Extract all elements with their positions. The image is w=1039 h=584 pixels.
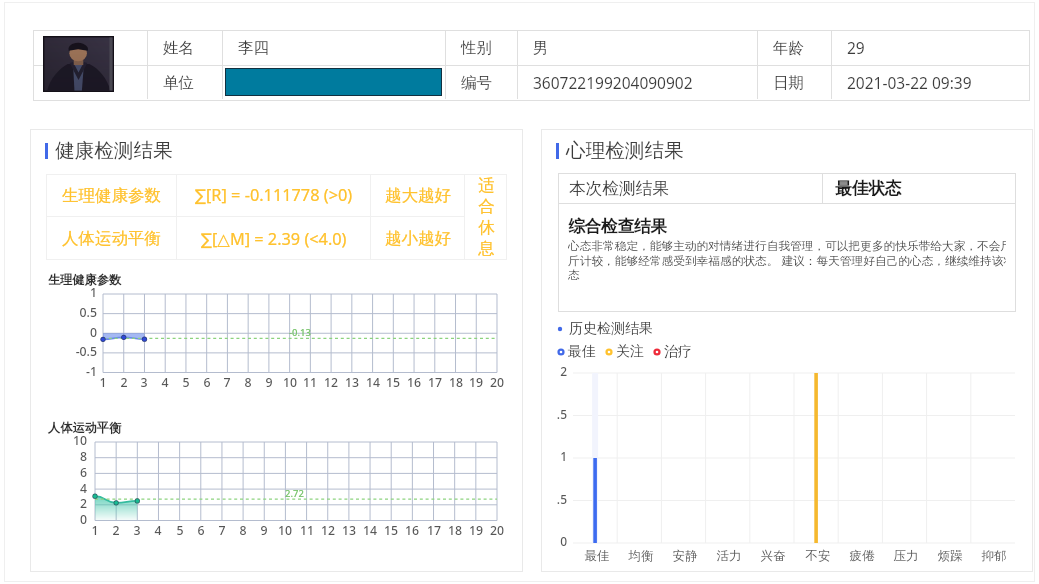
staticText: 人体运动平衡 (62, 228, 161, 249)
staticText: 心态非常稳定，能够主动的对情绪进行自我管理，可以把更多的快乐带给大家，不会斤 斤… (568, 239, 1006, 283)
staticText: 8 (49, 448, 87, 465)
button[interactable]: 生理健康参数 (46, 174, 464, 216)
staticText: 10 (279, 374, 301, 391)
staticText: 人体运动平衡 (48, 420, 122, 435)
staticText: 均衡 (619, 548, 663, 564)
button[interactable]: 本次检测结果 (558, 173, 1016, 203)
staticText: 历史检测结果 (569, 320, 653, 338)
staticText: ∑[△M] = 2.39 (<4.0) (201, 228, 347, 250)
staticText: 11 (299, 374, 321, 391)
staticText: 13 (341, 374, 363, 391)
staticText: 抑郁 (972, 548, 1016, 564)
staticText: 治疗 (664, 343, 692, 361)
staticText: 安静 (663, 548, 707, 564)
staticText: 5 (175, 374, 197, 391)
staticText: 心理检测结果 (566, 138, 684, 163)
staticText: 3 (126, 522, 148, 539)
staticText: 编号 (461, 73, 492, 93)
button[interactable]: 人体运动平衡 (46, 217, 464, 260)
staticText: 5 (169, 522, 191, 539)
staticText: 2.72 (285, 487, 304, 500)
staticText: 2 (532, 363, 567, 379)
button[interactable]: 历史检测结果 (555, 320, 653, 338)
staticText: ∑[R] = -0.111778 (>0) (195, 184, 353, 206)
staticText: 15 (380, 522, 402, 539)
staticText: -0.13 (289, 326, 311, 339)
staticText: 活力 (707, 548, 751, 564)
staticText: 20 (486, 522, 508, 539)
button[interactable]: 健康检测结果 (45, 138, 173, 163)
staticText: 4 (147, 522, 169, 539)
staticText: 7 (216, 374, 238, 391)
staticText: 6 (49, 464, 87, 481)
staticText: 疲倦 (840, 548, 884, 564)
staticText: 13 (338, 522, 360, 539)
button[interactable]: 最佳 (555, 343, 692, 361)
staticText: 姓名 (163, 38, 194, 58)
staticText: 健康检测结果 (55, 138, 173, 163)
staticText: 14 (362, 374, 384, 391)
staticText: 年龄 (773, 38, 804, 58)
staticText: -1 (59, 363, 97, 380)
staticText: 9 (253, 522, 275, 539)
staticText: 6 (196, 374, 218, 391)
staticText: 2 (105, 522, 127, 539)
staticText: 1 (532, 448, 567, 464)
staticText: 10 (49, 432, 87, 449)
staticText: 1 (59, 284, 97, 301)
staticText: 单位 (163, 73, 194, 93)
staticText: 4 (154, 374, 176, 391)
staticText: 生理健康参数 (48, 272, 122, 287)
staticText: 0 (59, 324, 97, 341)
staticText: 20 (486, 374, 508, 391)
staticText: 3 (133, 374, 155, 391)
staticText: 关注 (616, 343, 644, 361)
staticText: 18 (445, 374, 467, 391)
staticText: 17 (423, 522, 445, 539)
staticText: 19 (465, 374, 487, 391)
staticText: 本次检测结果 (569, 178, 670, 199)
staticText: 2021-03-22 09:39 (847, 72, 972, 93)
staticText: .5 (532, 406, 567, 422)
staticText: 最佳 (575, 548, 619, 564)
staticText: 9 (258, 374, 280, 391)
staticText: 18 (444, 522, 466, 539)
staticText: 最佳 (568, 343, 596, 361)
staticText: -0.5 (59, 343, 97, 360)
staticText: 最佳状态 (835, 178, 902, 199)
staticText: 综合检查结果 (568, 216, 667, 237)
staticText: 1 (84, 522, 106, 539)
staticText: 男 (533, 38, 549, 58)
staticText: 16 (401, 522, 423, 539)
staticText: 越大越好 (385, 185, 451, 206)
staticText: 15 (382, 374, 404, 391)
button[interactable]: 心理检测结果 (556, 138, 684, 163)
staticText: 2 (113, 374, 135, 391)
staticText: 10 (274, 522, 296, 539)
staticText: 17 (424, 374, 446, 391)
staticText: 适 合 休 息 (478, 175, 495, 259)
staticText: 2 (49, 495, 87, 512)
staticText: 烦躁 (928, 548, 972, 564)
staticText: 越小越好 (385, 228, 451, 249)
staticText: 6 (190, 522, 212, 539)
button[interactable]: Patient photo (43, 36, 114, 92)
staticText: 生理健康参数 (62, 185, 161, 206)
staticText: 12 (320, 374, 342, 391)
staticText: 11 (296, 522, 318, 539)
staticText: 8 (232, 522, 254, 539)
staticText: 12 (317, 522, 339, 539)
staticText: 8 (237, 374, 259, 391)
staticText: 16 (403, 374, 425, 391)
staticText: 1 (92, 374, 114, 391)
staticText: 0 (532, 533, 567, 549)
staticText: 29 (847, 37, 865, 58)
staticText: .5 (532, 491, 567, 507)
staticText: 4 (49, 480, 87, 497)
staticText: 0.5 (59, 304, 97, 321)
staticText: 李四 (238, 38, 269, 58)
staticText: 日期 (773, 73, 804, 93)
staticText: 14 (359, 522, 381, 539)
staticText: 性别 (461, 38, 492, 58)
staticText: 不安 (796, 548, 840, 564)
